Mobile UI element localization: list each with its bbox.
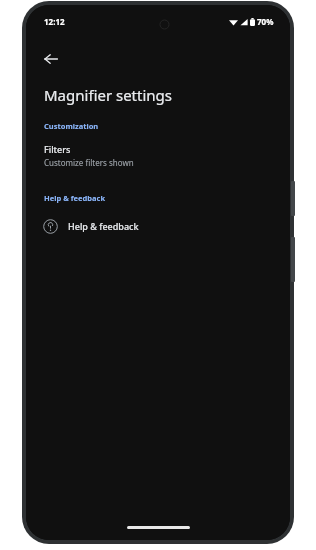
staticText: Help & feedback	[44, 193, 106, 203]
staticText: Help & feedback	[68, 220, 139, 232]
staticText: Customize filters shown	[44, 157, 134, 168]
staticText: Filters	[44, 143, 71, 155]
button[interactable]: Filters	[26, 142, 290, 172]
staticText: 70%	[257, 16, 274, 27]
staticText: Magnifier settings	[44, 85, 172, 105]
staticText: Customization	[44, 121, 99, 131]
button[interactable]: Help & feedback	[26, 212, 290, 240]
staticText: 12:12	[44, 16, 65, 27]
button[interactable]: Back	[36, 44, 66, 74]
